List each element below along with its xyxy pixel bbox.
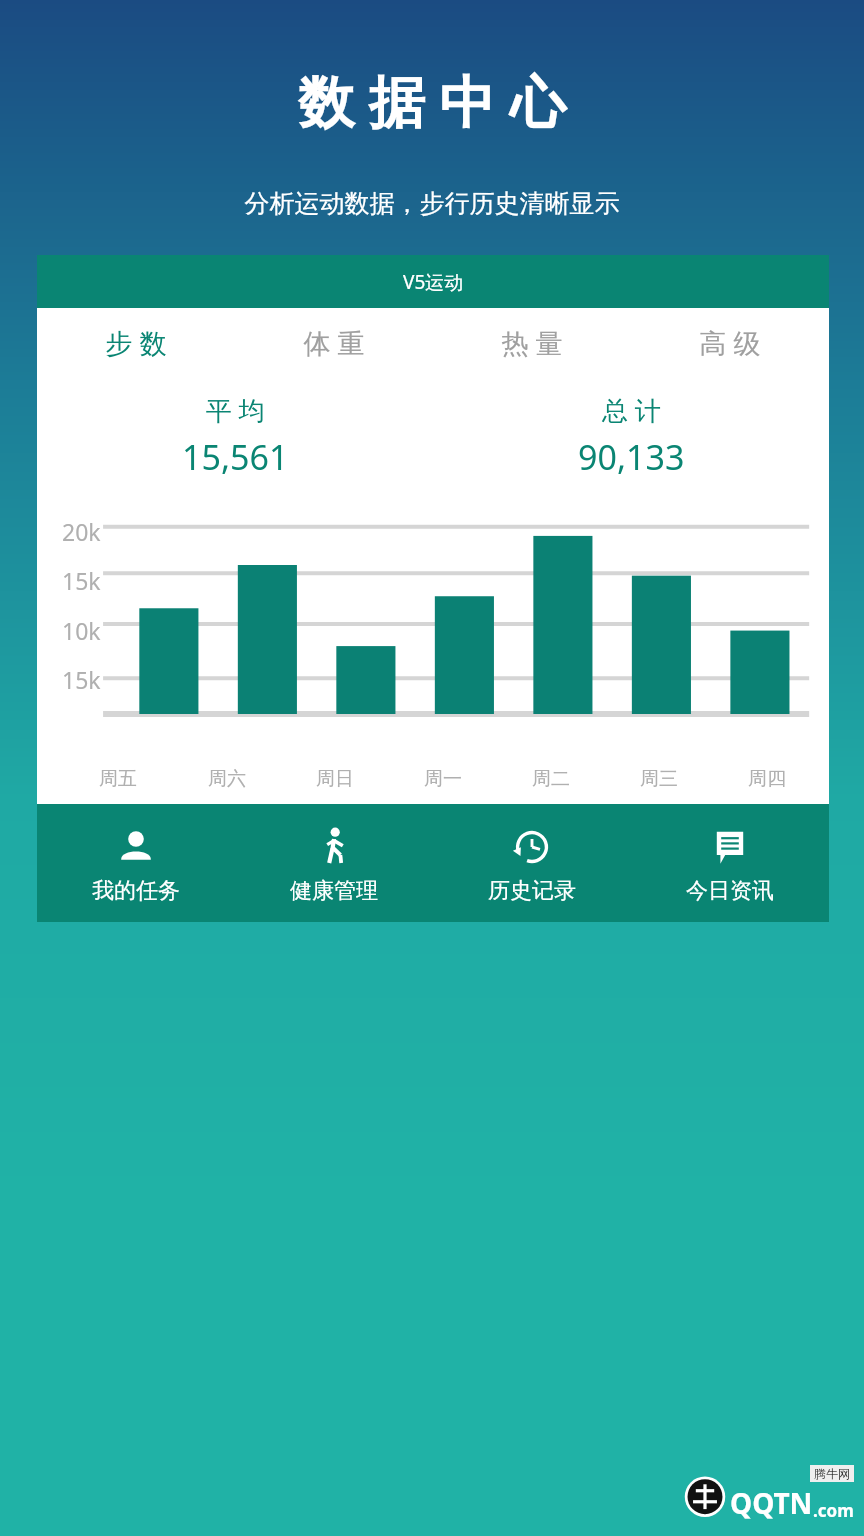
staticText: 数 据 中 心 bbox=[0, 62, 864, 138]
staticText: V5运动 bbox=[403, 269, 464, 295]
button[interactable]: 热 量 bbox=[433, 316, 631, 368]
staticText: 周一 bbox=[424, 767, 462, 791]
staticText: 历史记录 bbox=[488, 877, 576, 905]
other: 今日资讯 bbox=[710, 827, 750, 867]
other: 健康管理 bbox=[314, 827, 354, 867]
staticText: 今日资讯 bbox=[686, 877, 774, 905]
staticText: 高 级 bbox=[699, 324, 761, 361]
other: 历史记录 bbox=[512, 827, 552, 867]
staticText: 周四 bbox=[748, 767, 786, 791]
staticText: 周五 bbox=[99, 767, 137, 791]
staticText: 15k bbox=[62, 565, 101, 596]
staticText: 15,561 bbox=[182, 434, 289, 480]
staticText: 腾牛网 bbox=[814, 1466, 850, 1481]
staticText: 总 计 bbox=[602, 392, 661, 428]
staticText: .com bbox=[813, 1499, 854, 1522]
staticText: QQTN bbox=[730, 1484, 813, 1522]
button[interactable]: 平 均 bbox=[37, 392, 433, 480]
staticText: 步 数 bbox=[105, 324, 167, 361]
staticText: 20k bbox=[62, 516, 101, 547]
other: 我的任务 bbox=[116, 827, 156, 867]
staticText: 平 均 bbox=[206, 392, 265, 428]
staticText: 体 重 bbox=[303, 324, 365, 361]
button[interactable]: 今日资讯 bbox=[631, 821, 829, 905]
button[interactable]: 总 计 bbox=[433, 392, 829, 480]
staticText: 我的任务 bbox=[92, 877, 180, 905]
staticText: 热 量 bbox=[501, 324, 563, 361]
button[interactable]: 步 数 bbox=[37, 316, 235, 368]
staticText: 15k bbox=[62, 664, 101, 695]
staticText: 10k bbox=[62, 615, 101, 646]
staticText: 周六 bbox=[208, 767, 246, 791]
button[interactable]: 历史记录 bbox=[433, 821, 631, 905]
staticText: 周三 bbox=[640, 767, 678, 791]
button[interactable]: 体 重 bbox=[235, 316, 433, 368]
button[interactable]: 高 级 bbox=[631, 316, 829, 368]
button[interactable]: 我的任务 bbox=[37, 821, 235, 905]
staticText: 90,133 bbox=[578, 434, 685, 480]
staticText: 健康管理 bbox=[290, 877, 378, 905]
staticText: 周二 bbox=[532, 767, 570, 791]
staticText: 周日 bbox=[316, 767, 354, 791]
staticText: 分析运动数据，步行历史清晰显示 bbox=[0, 188, 864, 219]
button[interactable]: 健康管理 bbox=[235, 821, 433, 905]
